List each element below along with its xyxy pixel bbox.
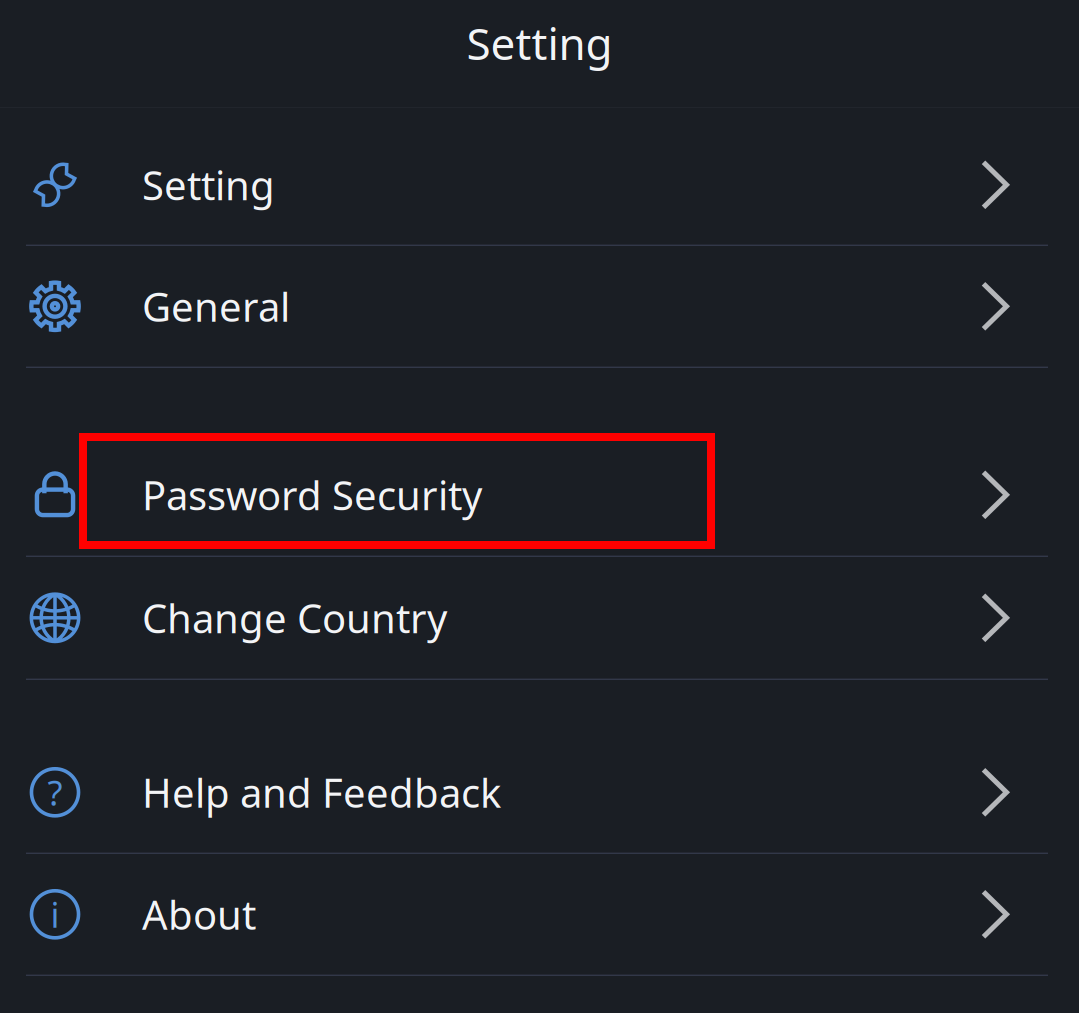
button[interactable]: Setting	[0, 125, 1079, 246]
staticText: ?	[47, 769, 62, 815]
staticText: Change Country	[142, 591, 447, 644]
staticText: Help and Feedback	[142, 766, 501, 819]
staticText: Password Security	[142, 468, 482, 521]
staticText: Setting	[466, 14, 612, 72]
button[interactable]: General	[0, 246, 1079, 368]
button[interactable]: ?	[0, 732, 1079, 854]
staticText: About	[142, 888, 256, 941]
button[interactable]: i	[0, 854, 1079, 976]
button[interactable]: Password Security	[0, 434, 1079, 557]
staticText: General	[142, 280, 290, 333]
staticText: Setting	[142, 158, 275, 211]
button[interactable]: Change Country	[0, 557, 1079, 680]
staticText: i	[50, 891, 59, 937]
